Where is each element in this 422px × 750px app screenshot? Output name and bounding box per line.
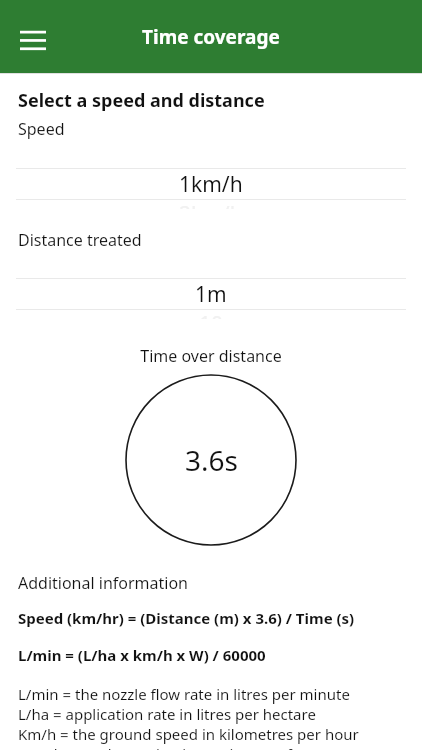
button[interactable]: Open navigation menu [10,14,56,60]
staticText: 2km/h [179,200,243,209]
staticText: Speed [18,118,65,140]
staticText: Speed (km/hr) = (Distance (m) x 3.6) / T… [18,608,355,628]
staticText: 10 [199,310,224,319]
staticText: Time coverage [142,24,280,50]
button[interactable]: 1m [0,278,422,319]
staticText: L/min = the nozzle flow rate in litres p… [18,684,359,750]
staticText: 3.6s [185,441,238,479]
staticText: L/min = (L/ha x km/h x W) / 60000 [18,645,266,665]
staticText: 1km/h [179,170,243,199]
staticText: Time over distance [0,345,422,367]
staticText: Select a speed and distance [18,88,265,113]
staticText: Distance treated [18,229,142,251]
staticText: 1m [195,280,227,309]
staticText: Additional information [18,572,188,594]
button[interactable]: 1km/h [0,168,422,209]
